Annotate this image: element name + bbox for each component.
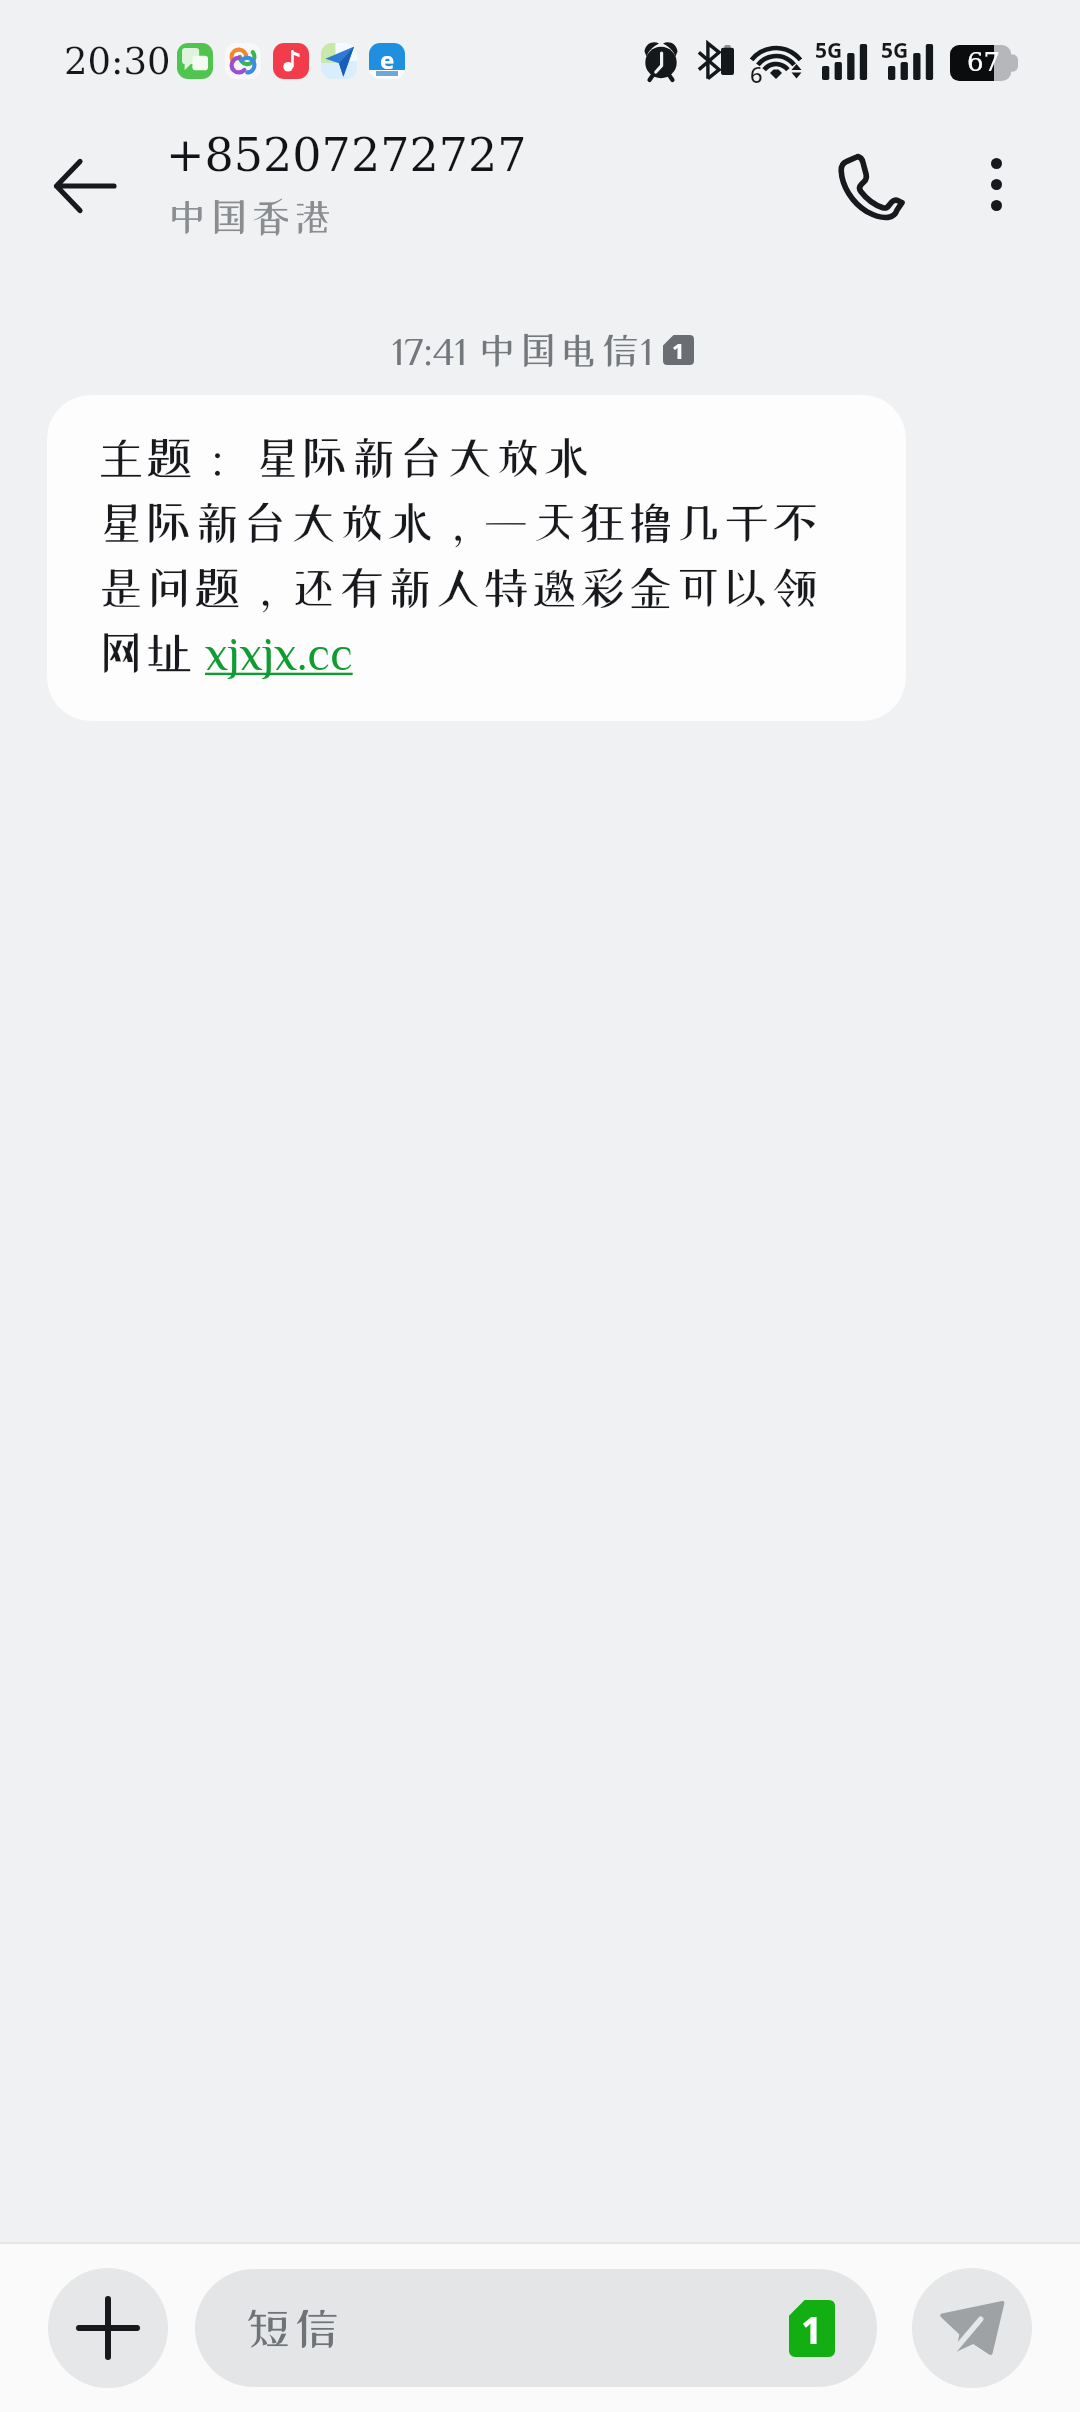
staticText: 主题： 星际新台大放水 星际新台大放水，一天狂撸几千不 是问题，还有新人特邀彩金… <box>97 434 819 676</box>
button[interactable]: 主题： 星际新台大放水 星际新台大放水，一天狂撸几千不 是问题，还有新人特邀彩金… <box>47 395 906 721</box>
button[interactable]: Send <box>912 2268 1032 2388</box>
staticText: 20:30 <box>64 40 171 83</box>
staticText: 1 <box>801 2304 823 2354</box>
button[interactable]: 短信 <box>195 2269 877 2387</box>
staticText: 5G <box>815 36 843 65</box>
staticText: 67 <box>967 47 1001 77</box>
button[interactable]: More options <box>941 129 1051 239</box>
staticText: 5G <box>881 36 909 65</box>
staticText: 17:41 中国电信1 <box>392 330 653 370</box>
button[interactable]: Back <box>20 121 150 251</box>
staticText: 中国香港 <box>166 196 334 237</box>
staticText: +85207272727 <box>166 128 527 182</box>
staticText: 6 <box>750 59 763 89</box>
button[interactable]: Add attachment <box>48 2268 168 2388</box>
staticText: e <box>380 43 395 70</box>
staticText: 1 <box>672 335 685 365</box>
button[interactable]: Call <box>805 121 935 251</box>
staticText: 短信 <box>243 2304 342 2352</box>
